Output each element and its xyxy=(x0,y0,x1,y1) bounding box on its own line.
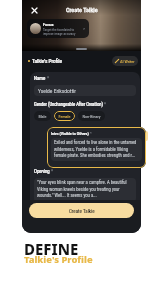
staticText: Target the facedated to improve image ac… xyxy=(43,28,76,36)
button[interactable]: Create Talkie xyxy=(29,203,134,218)
staticText: Exiled and forced to live alone in the u… xyxy=(54,140,139,158)
button[interactable]: "Your eyes blink span near a campfire. A… xyxy=(34,178,136,202)
staticText: Create Talkie xyxy=(66,6,98,13)
button[interactable]: Female xyxy=(54,111,75,121)
staticText: Talkie's Profile xyxy=(24,253,93,266)
button[interactable]: AI Writer xyxy=(112,56,138,66)
staticText: DEFINE xyxy=(24,239,79,259)
staticText: Opening xyxy=(34,169,50,175)
staticText: Create Talkie xyxy=(69,208,95,214)
button[interactable]: Focus xyxy=(27,19,89,38)
staticText: Female xyxy=(58,114,71,119)
staticText: AI Writer xyxy=(120,59,135,64)
staticText: Talkie's Profile xyxy=(32,58,63,64)
staticText: * xyxy=(90,131,92,136)
staticText: Yselde Eriksdottir xyxy=(38,88,76,94)
staticText: Name xyxy=(34,76,46,82)
staticText: Non-Binary xyxy=(82,114,101,119)
button[interactable]: Intro (Visible to Others) xyxy=(47,127,146,168)
staticText: > xyxy=(83,26,86,31)
staticText: * xyxy=(51,169,54,175)
button[interactable]: Close xyxy=(29,5,40,16)
staticText: * xyxy=(104,102,106,107)
staticText: Intro (Visible to Others) xyxy=(51,131,89,136)
button[interactable]: Yselde Eriksdottir xyxy=(34,85,136,96)
staticText: Focus xyxy=(43,22,54,27)
staticText: Gender (Unchangeable After Creation) xyxy=(34,102,103,107)
button[interactable]: Non-Binary xyxy=(78,111,105,121)
staticText: "Your eyes blink span near a campfire. A… xyxy=(37,180,133,198)
staticText: Male xyxy=(38,114,47,119)
button[interactable]: Male xyxy=(34,111,51,121)
staticText: * xyxy=(47,76,50,82)
